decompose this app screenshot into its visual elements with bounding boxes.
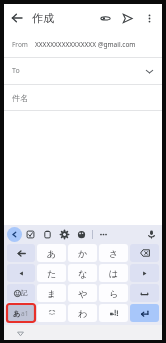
- button[interactable]: More options: [138, 7, 160, 29]
- button[interactable]: 件名: [4, 85, 162, 110]
- staticText: From: [12, 40, 28, 49]
- staticText: た: [47, 268, 57, 279]
- button[interactable]: Clipboard: [39, 226, 56, 243]
- staticText: わ: [78, 308, 88, 319]
- button[interactable]: FACES: [37, 304, 66, 322]
- button[interactable]: Theme: [73, 226, 90, 243]
- staticText: は: [109, 268, 119, 279]
- button[interactable]: From: [4, 32, 162, 57]
- button[interactable]: さ: [99, 244, 128, 262]
- button[interactable]: か: [68, 244, 97, 262]
- staticText: 作成: [32, 11, 54, 25]
- button[interactable]: Clipboard history: [22, 226, 39, 243]
- button[interactable]: PUNCT: [99, 304, 128, 322]
- staticText: さ: [109, 248, 119, 259]
- staticText: 記: [21, 289, 28, 297]
- button[interactable]: MODE_AA1: [7, 304, 35, 322]
- button[interactable]: や: [68, 284, 97, 302]
- button[interactable]: は: [99, 264, 128, 282]
- staticText: ま: [47, 288, 57, 299]
- staticText: 件名: [12, 93, 28, 103]
- button[interactable]: Back: [14, 327, 26, 339]
- button[interactable]: SPACE: [130, 284, 159, 302]
- button[interactable]: Send: [116, 7, 138, 29]
- staticText: か: [78, 248, 88, 259]
- staticText: ら: [109, 288, 119, 299]
- button[interactable]: わ: [68, 304, 97, 322]
- button[interactable]: Settings: [56, 226, 73, 243]
- button[interactable]: BACKSPACE: [130, 244, 159, 262]
- staticText: a1: [21, 309, 29, 318]
- button[interactable]: Voice input: [143, 226, 159, 242]
- button[interactable]: ARROW_LEFT: [7, 244, 35, 262]
- staticText: な: [78, 268, 88, 279]
- button[interactable]: Back: [4, 5, 30, 31]
- button[interactable]: あ: [37, 244, 66, 262]
- staticText: あ: [13, 309, 21, 318]
- button[interactable]: TRI_LEFT: [7, 264, 35, 282]
- button[interactable]: Expand toolbar: [7, 227, 22, 242]
- button[interactable]: To: [4, 58, 162, 84]
- button[interactable]: More: [95, 226, 112, 243]
- button[interactable]: TRI_RIGHT: [130, 264, 159, 282]
- staticText: や: [78, 288, 88, 299]
- staticText: あ: [47, 248, 57, 259]
- staticText: XXXXXXXXXXXXXXXX @gmail.com: [35, 40, 136, 49]
- button[interactable]: ま: [37, 284, 66, 302]
- button[interactable]: た: [37, 264, 66, 282]
- button[interactable]: な: [68, 264, 97, 282]
- button[interactable]: EMOJI_KI: [7, 284, 35, 302]
- button[interactable]: ENTER: [130, 304, 159, 322]
- staticText: To: [12, 66, 20, 76]
- button[interactable]: Attach: [94, 7, 116, 29]
- button[interactable]: ら: [99, 284, 128, 302]
